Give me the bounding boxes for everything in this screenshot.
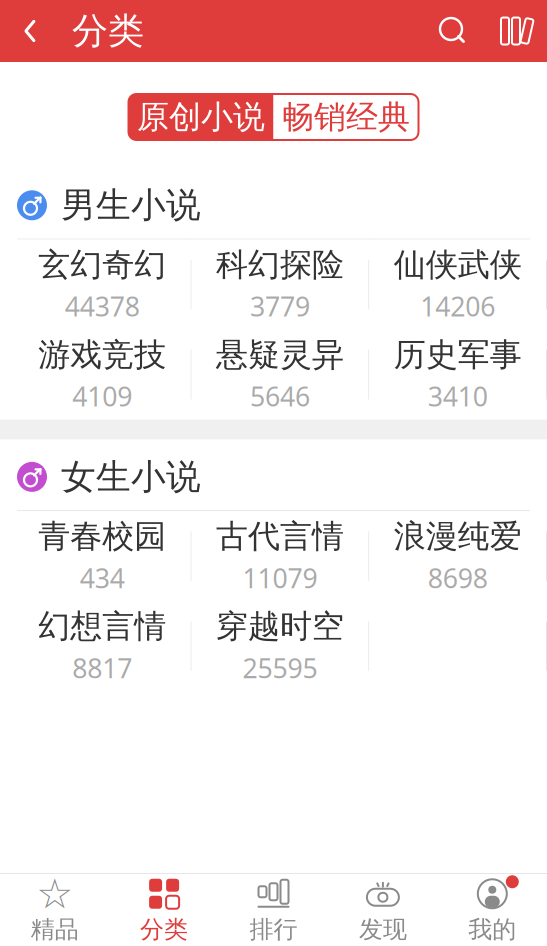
staticText: ☆ <box>36 870 73 917</box>
staticText: 科幻探险 <box>216 245 344 284</box>
staticText: 44378 <box>65 288 140 324</box>
staticText: 发现 <box>359 915 407 944</box>
button[interactable]: 玄幻奇幻 <box>14 240 191 330</box>
staticText: 25595 <box>242 650 317 685</box>
staticText: ★ <box>37 871 73 916</box>
button[interactable]: ★ <box>0 874 109 946</box>
button[interactable]: 返回 <box>0 0 60 62</box>
staticText: 穿越时空 <box>216 607 344 646</box>
staticText: 我的 <box>468 915 516 944</box>
staticText: 3410 <box>428 378 488 414</box>
staticText: 5646 <box>250 378 310 414</box>
staticText: 分类 <box>72 9 144 53</box>
button[interactable]: 浪漫纯爱 <box>369 511 546 601</box>
staticText: 8698 <box>428 560 488 595</box>
button[interactable]: 幻想言情 <box>14 601 191 691</box>
button[interactable]: 畅销经典 <box>273 94 418 140</box>
staticText: 古代言情 <box>216 517 344 556</box>
staticText: 分类 <box>140 915 188 944</box>
staticText: 悬疑灵异 <box>216 335 344 374</box>
staticText: 仙侠武侠 <box>394 245 522 284</box>
staticText: 4109 <box>72 378 132 414</box>
button[interactable]: 仙侠武侠 <box>369 240 546 330</box>
button[interactable]: 穿越时空 <box>192 601 368 691</box>
staticText: 女生小说 <box>61 456 201 498</box>
button[interactable]: 原创小说 <box>128 94 273 140</box>
button[interactable]: 分类 <box>109 874 219 946</box>
button[interactable]: 我的 <box>438 874 547 946</box>
staticText: 男生小说 <box>61 184 201 227</box>
button[interactable]: 游戏竞技 <box>14 330 191 420</box>
button[interactable]: 悬疑灵异 <box>192 330 368 420</box>
staticText: 8817 <box>72 650 132 685</box>
button[interactable]: 搜索 <box>421 0 485 62</box>
staticText: 游戏竞技 <box>38 335 166 374</box>
button[interactable]: 青春校园 <box>14 511 191 601</box>
staticText: 历史军事 <box>394 335 522 374</box>
staticText: 11079 <box>242 560 317 595</box>
button[interactable]: 书架 <box>485 0 547 62</box>
staticText: 畅销经典 <box>282 97 410 137</box>
staticText: 浪漫纯爱 <box>394 517 522 556</box>
staticText: 排行 <box>249 915 297 944</box>
staticText: 青春校园 <box>38 517 166 556</box>
staticText: 434 <box>80 560 125 595</box>
button[interactable]: 科幻探险 <box>192 240 368 330</box>
button[interactable]: 历史军事 <box>369 330 546 420</box>
button[interactable]: 古代言情 <box>192 511 368 601</box>
staticText: 玄幻奇幻 <box>38 245 166 284</box>
staticText: 3779 <box>250 288 310 324</box>
button[interactable]: 排行 <box>219 874 328 946</box>
staticText: 幻想言情 <box>38 607 166 646</box>
button[interactable]: 发现 <box>328 874 438 946</box>
staticText: 14206 <box>420 288 495 324</box>
staticText: 精品 <box>31 915 79 944</box>
staticText: 原创小说 <box>137 97 265 137</box>
